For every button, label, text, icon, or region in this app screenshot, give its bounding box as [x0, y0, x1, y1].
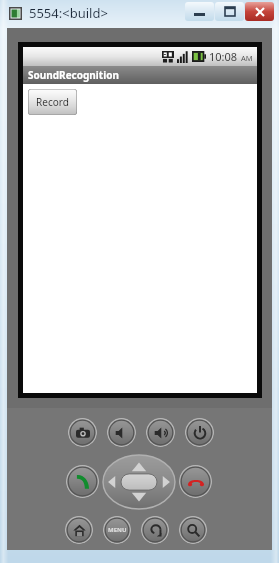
staticText: 5554:<build> — [29, 4, 108, 22]
button[interactable]: Power — [185, 418, 214, 447]
button[interactable]: Record — [28, 89, 77, 115]
staticText: MENU — [108, 526, 127, 534]
button[interactable]: Window button — [185, 2, 214, 21]
button[interactable]: Call — [66, 465, 99, 498]
button[interactable]: Back — [141, 516, 169, 544]
button[interactable]: End call — [179, 465, 212, 498]
button[interactable]: Volume up — [146, 418, 175, 447]
staticText: AM — [241, 53, 253, 63]
button[interactable]: Directional pad — [103, 455, 175, 509]
staticText: Record — [36, 95, 69, 109]
button[interactable]: Camera — [68, 418, 97, 447]
button[interactable]: Window button — [215, 2, 244, 21]
staticText: 10:08 — [209, 49, 238, 64]
button[interactable]: Volume down — [107, 418, 136, 447]
button[interactable]: Home — [65, 516, 93, 544]
button[interactable]: Search — [179, 516, 207, 544]
button[interactable]: Menu — [103, 516, 131, 544]
button[interactable]: Close — [245, 2, 274, 21]
staticText: SoundRecognition — [28, 68, 119, 82]
